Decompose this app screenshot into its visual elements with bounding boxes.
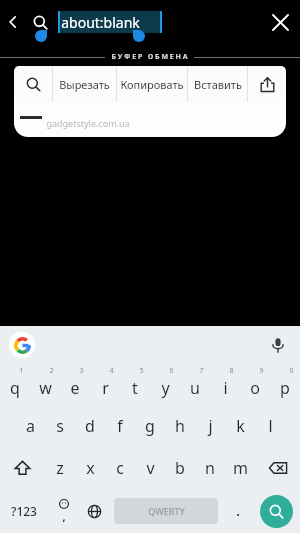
- button[interactable]: f: [105, 405, 135, 447]
- staticText: 5: [139, 366, 144, 376]
- staticText: Копировать: [120, 77, 184, 92]
- button[interactable]: 5: [120, 363, 150, 405]
- staticText: 4: [109, 366, 114, 376]
- staticText: n: [205, 457, 215, 479]
- button[interactable]: Change language: [79, 489, 110, 533]
- staticText: 1: [19, 366, 24, 376]
- staticText: gadgetstyle.com.ua: [46, 117, 130, 129]
- staticText: 2: [49, 366, 54, 376]
- staticText: b: [175, 457, 185, 479]
- button[interactable]: .: [222, 489, 253, 533]
- button[interactable]: Shift: [0, 447, 45, 489]
- button[interactable]: Search: [260, 495, 293, 528]
- button[interactable]: d: [75, 405, 105, 447]
- button[interactable]: v: [135, 447, 165, 489]
- staticText: 0: [289, 366, 294, 376]
- button[interactable]: QWERTY: [114, 498, 218, 524]
- button[interactable]: 1: [0, 363, 30, 405]
- button[interactable]: 9: [240, 363, 270, 405]
- staticText: 8: [229, 366, 234, 376]
- button[interactable]: 0: [270, 363, 300, 405]
- button[interactable]: Копировать: [117, 66, 187, 102]
- button[interactable]: h: [165, 405, 195, 447]
- button[interactable]: Close: [260, 0, 300, 44]
- button[interactable]: l: [255, 405, 285, 447]
- button[interactable]: n: [195, 447, 225, 489]
- button[interactable]: Google: [9, 332, 35, 358]
- staticText: about:blank: [61, 13, 140, 32]
- button[interactable]: x: [75, 447, 105, 489]
- button[interactable]: g: [135, 405, 165, 447]
- staticText: t: [132, 377, 138, 399]
- button[interactable]: Emoji: [48, 489, 79, 533]
- button[interactable]: c: [105, 447, 135, 489]
- button[interactable]: 8: [210, 363, 240, 405]
- staticText: Б У Ф Е Р О Б М Е Н А: [111, 52, 188, 62]
- staticText: i: [223, 377, 228, 399]
- staticText: c: [116, 457, 124, 479]
- staticText: o: [250, 377, 260, 399]
- button[interactable]: Search selection: [14, 66, 52, 102]
- button[interactable]: 3: [60, 363, 90, 405]
- button[interactable]: 6: [150, 363, 180, 405]
- staticText: h: [175, 415, 185, 437]
- button[interactable]: ?123: [0, 489, 48, 533]
- staticText: p: [280, 377, 290, 399]
- staticText: m: [233, 457, 248, 479]
- button[interactable]: Share: [248, 66, 286, 102]
- button[interactable]: Back: [0, 0, 26, 44]
- staticText: Вставить: [194, 77, 242, 92]
- staticText: e: [70, 377, 80, 399]
- staticText: f: [117, 415, 123, 437]
- staticText: x: [86, 457, 95, 479]
- button[interactable]: z: [45, 447, 75, 489]
- staticText: z: [56, 457, 64, 479]
- button[interactable]: 7: [180, 363, 210, 405]
- staticText: QWERTY: [148, 505, 185, 517]
- button[interactable]: Backspace: [255, 447, 300, 489]
- staticText: v: [146, 457, 155, 479]
- staticText: 7: [199, 366, 204, 376]
- staticText: u: [190, 377, 200, 399]
- button[interactable]: Search: [26, 0, 54, 44]
- button[interactable]: 4: [90, 363, 120, 405]
- button[interactable]: 2: [30, 363, 60, 405]
- staticText: w: [39, 377, 52, 399]
- button[interactable]: Вставить: [188, 66, 247, 102]
- button[interactable]: k: [225, 405, 255, 447]
- button[interactable]: m: [225, 447, 255, 489]
- button[interactable]: Вырезать: [53, 66, 116, 102]
- staticText: y: [161, 377, 170, 399]
- button[interactable]: Voice input: [266, 333, 290, 357]
- staticText: 9: [259, 366, 264, 376]
- staticText: Вырезать: [59, 77, 110, 92]
- button[interactable]: a: [15, 405, 45, 447]
- staticText: a: [26, 415, 35, 437]
- staticText: ?123: [11, 503, 37, 519]
- staticText: l: [268, 415, 273, 437]
- staticText: s: [56, 415, 64, 437]
- staticText: g: [145, 415, 155, 437]
- staticText: q: [10, 377, 20, 399]
- button[interactable]: b: [165, 447, 195, 489]
- button[interactable]: s: [45, 405, 75, 447]
- staticText: d: [85, 415, 95, 437]
- staticText: 6: [169, 366, 174, 376]
- staticText: k: [236, 415, 245, 437]
- button[interactable]: gadgetstyle.com.ua: [14, 96, 286, 137]
- staticText: .: [236, 502, 240, 520]
- staticText: 3: [79, 366, 84, 376]
- button[interactable]: j: [195, 405, 225, 447]
- staticText: ,: [62, 509, 66, 524]
- staticText: j: [208, 415, 213, 437]
- staticText: r: [102, 377, 109, 399]
